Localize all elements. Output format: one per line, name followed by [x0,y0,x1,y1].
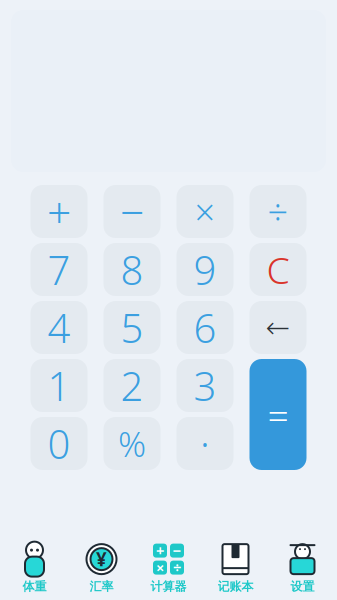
staticText: 5 [120,301,143,354]
button[interactable]: 9 [176,243,233,296]
button[interactable]: + [30,185,87,238]
staticText: − [120,183,144,240]
staticText: 7 [47,243,70,296]
staticText: 8 [120,243,143,296]
button[interactable]: 3 [176,359,233,412]
button[interactable]: 4 [30,301,87,354]
button[interactable]: 8 [103,243,160,296]
button[interactable]: 5 [103,301,160,354]
staticText: 6 [193,301,216,354]
staticText: 体重 [22,579,46,594]
staticText: × [194,188,215,235]
staticText: 0 [47,417,70,470]
staticText: · [200,417,210,470]
button[interactable]: C [249,243,306,296]
button[interactable]: − [103,185,160,238]
button[interactable]: 体重 [1,542,68,594]
button[interactable]: 6 [176,301,233,354]
staticText: = [267,390,288,439]
button[interactable]: 设置 [269,542,336,594]
staticText: ÷ [267,188,288,235]
staticText: 计算器 [150,579,186,594]
button[interactable]: 记账本 [202,542,269,594]
staticText: 记账本 [217,579,253,594]
staticText: + [47,183,71,240]
staticText: + [156,541,164,560]
staticText: 4 [47,301,70,354]
button[interactable]: = [249,359,306,470]
button[interactable]: 0 [30,417,87,470]
staticText: − [172,541,181,560]
staticText: × [156,558,164,577]
staticText: C [266,245,289,294]
staticText: % [118,420,146,466]
button[interactable]: · [176,417,233,470]
staticText: ÷ [173,558,181,577]
staticText: 1 [47,359,70,412]
staticText: ¥ [96,547,107,571]
staticText: ← [265,311,290,344]
button[interactable]: 1 [30,359,87,412]
button[interactable]: + [135,542,202,594]
button[interactable]: × [176,185,233,238]
button[interactable]: ← [249,301,306,354]
staticText: 汇率 [89,579,113,594]
staticText: 9 [193,243,216,296]
staticText: 设置 [290,579,314,594]
staticText: 2 [120,359,143,412]
button[interactable]: ¥ [68,542,135,594]
button[interactable]: 2 [103,359,160,412]
staticText: 3 [193,359,216,412]
button[interactable]: ÷ [249,185,306,238]
button[interactable]: 7 [30,243,87,296]
button[interactable]: % [103,417,160,470]
